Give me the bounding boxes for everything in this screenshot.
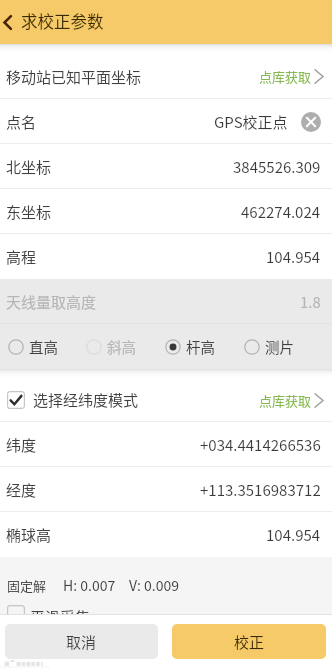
button[interactable]: 经度 [0, 467, 332, 512]
staticText: 点库获取 [259, 391, 312, 410]
button[interactable]: 点名 [0, 99, 332, 144]
staticText: 选择经纬度模式 [33, 389, 139, 411]
staticText: 校正 [234, 631, 265, 653]
button[interactable]: 高程 [0, 234, 332, 279]
staticText: 固定解 [7, 576, 47, 595]
button[interactable]: 取消 [5, 624, 158, 659]
button[interactable]: 北坐标 [0, 144, 332, 189]
staticText: 北坐标 [6, 156, 52, 178]
staticText: 纬度 [6, 434, 37, 456]
staticText: 104.954 [266, 246, 321, 268]
button[interactable]: 校正 [172, 624, 326, 659]
staticText: 东坐标 [6, 201, 52, 223]
staticText: V: 0.009 [129, 575, 180, 595]
button[interactable]: 移动站已知平面坐标 [0, 54, 332, 99]
button[interactable]: 斜高 [86, 324, 136, 369]
staticText: 天线量取高度 [6, 291, 97, 313]
button[interactable]: 测片 [244, 324, 294, 369]
staticText: 测片 [265, 336, 294, 357]
button[interactable]: 椭球高 [0, 512, 332, 557]
button[interactable]: 东坐标 [0, 189, 332, 234]
staticText: 点库获取 [259, 67, 312, 86]
staticText: 杆高 [186, 336, 215, 357]
staticText: 高程 [6, 246, 37, 268]
staticText: GPS校正点 [214, 111, 288, 133]
button[interactable]: 纬度 [0, 422, 332, 467]
button[interactable]: 天线量取高度 [0, 279, 332, 324]
button[interactable]: 选择经纬度模式 [0, 378, 332, 422]
staticText: 取消 [66, 631, 97, 653]
button[interactable]: Back [0, 0, 15, 44]
staticText: 直高 [29, 336, 58, 357]
staticText: 斜高 [107, 336, 136, 357]
button[interactable]: 杆高 [165, 324, 215, 369]
button[interactable]: 直高 [8, 324, 58, 369]
staticText: 104.954 [266, 524, 321, 546]
staticText: 经度 [6, 479, 37, 501]
staticText: H: 0.007 [63, 575, 116, 595]
staticText: +113.3516983712 [200, 479, 321, 501]
staticText: 462274.024 [241, 201, 321, 223]
staticText: 移动站已知平面坐标 [6, 66, 142, 88]
staticText: 平滑采集 [30, 606, 91, 615]
staticText: 3845526.309 [233, 156, 321, 178]
staticText: 1.8 [300, 291, 321, 313]
button[interactable]: Clear point name [301, 112, 321, 132]
staticText: +034.4414266536 [200, 434, 321, 456]
staticText: 求校正参数 [21, 9, 104, 33]
staticText: 椭球高 [6, 524, 52, 546]
staticText: 点名 [6, 111, 37, 133]
